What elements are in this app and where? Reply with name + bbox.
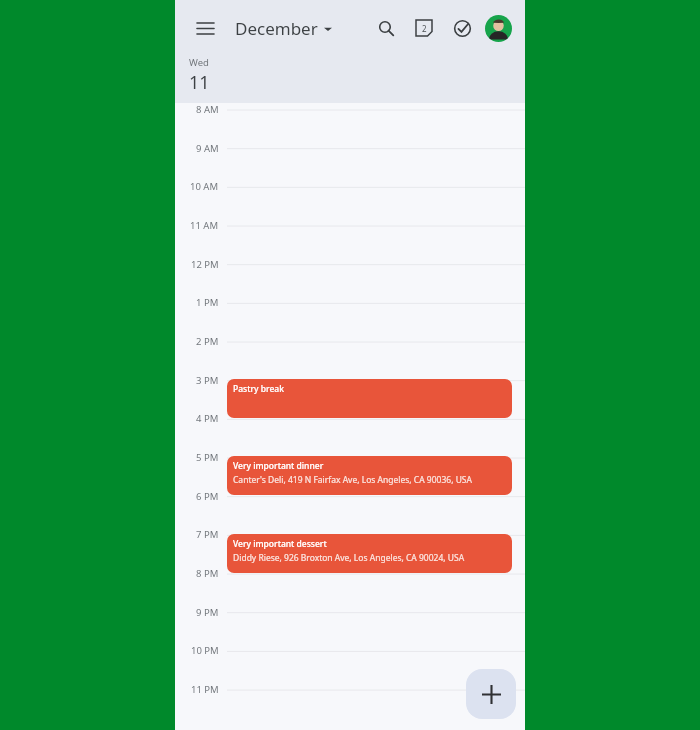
staticText: 10 PM — [191, 644, 219, 657]
staticText: Diddy Riese, 926 Broxton Ave, Los Angele… — [233, 552, 465, 564]
staticText: December — [235, 17, 318, 40]
staticText: 5 PM — [196, 451, 219, 464]
button[interactable]: Very important dinner — [227, 456, 512, 495]
staticText: 12 PM — [191, 258, 219, 271]
staticText: 2 PM — [196, 335, 219, 348]
button[interactable]: Today — [407, 11, 441, 45]
staticText: 3 PM — [196, 374, 219, 387]
staticText: Very important dinner — [233, 460, 324, 472]
button[interactable]: Search — [369, 11, 403, 45]
staticText: 7 PM — [196, 528, 219, 541]
button[interactable]: Very important dessert — [227, 534, 512, 573]
staticText: 6 PM — [196, 490, 219, 503]
staticText: 11 AM — [190, 219, 219, 232]
staticText: 8 PM — [196, 567, 219, 580]
staticText: 4 PM — [196, 412, 219, 425]
button[interactable]: Pastry break — [227, 379, 512, 418]
staticText: 9 PM — [196, 606, 219, 619]
button[interactable]: December — [231, 13, 336, 44]
staticText: Canter's Deli, 419 N Fairfax Ave, Los An… — [233, 474, 472, 486]
staticText: 9 AM — [196, 142, 219, 155]
staticText: 2 — [422, 23, 427, 34]
button[interactable]: Open navigation menu — [188, 11, 222, 45]
staticText: Wed — [189, 56, 209, 69]
button[interactable]: Tasks — [445, 11, 479, 45]
button[interactable]: Account — [485, 15, 512, 42]
staticText: Pastry break — [233, 383, 284, 395]
staticText: 1 PM — [196, 296, 219, 309]
staticText: 10 AM — [190, 180, 219, 193]
staticText: 8 AM — [196, 103, 219, 116]
staticText: Very important dessert — [233, 538, 327, 550]
staticText: 11 PM — [191, 683, 219, 696]
button[interactable]: Create new event — [466, 669, 516, 719]
staticText: 11 — [189, 70, 210, 95]
